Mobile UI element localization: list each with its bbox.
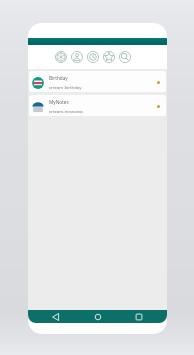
button[interactable]: MyNotes [29, 95, 166, 116]
button[interactable]: Search [119, 51, 131, 63]
staticText: vrteam birthday [49, 84, 82, 90]
button[interactable]: Favourites [103, 51, 115, 63]
button[interactable]: Clock [87, 51, 99, 63]
button[interactable]: Settings [55, 51, 67, 63]
button[interactable]: Home [93, 312, 103, 322]
button[interactable]: Contacts [71, 51, 83, 63]
staticText: MyNotes [49, 99, 69, 105]
staticText: Birthday [49, 75, 68, 81]
button[interactable]: Birthday [29, 71, 166, 92]
button[interactable]: Back [51, 312, 61, 322]
staticText: vrteam.misnotas [49, 108, 83, 114]
button[interactable]: Recents [134, 312, 144, 322]
